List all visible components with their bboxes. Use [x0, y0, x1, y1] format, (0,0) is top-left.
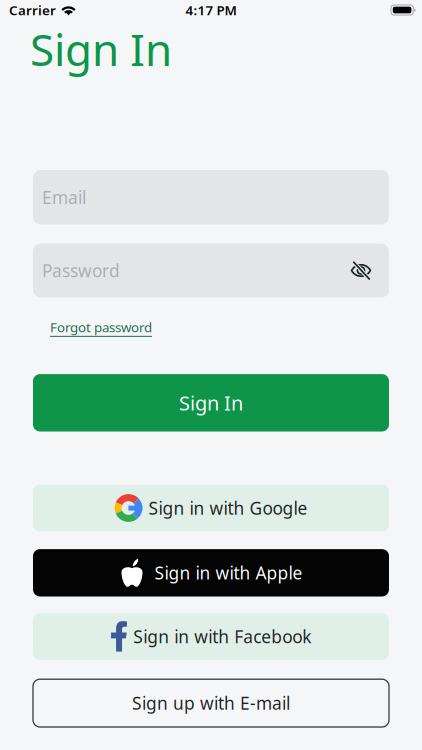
staticText: 4:17 PM [185, 1, 236, 19]
staticText: Carrier [9, 1, 56, 19]
staticText: Sign in with Apple [154, 561, 302, 584]
staticText: Sign in with Google [148, 496, 307, 519]
staticText: Sign up with E-mail [132, 692, 290, 715]
staticText: Sign In [179, 389, 243, 416]
staticText: Sign In [30, 20, 172, 78]
button[interactable]: Sign up with E-mail [33, 679, 389, 727]
staticText: Password [42, 259, 120, 282]
staticText: Forgot password [50, 318, 152, 336]
staticText: Email [42, 186, 86, 209]
button[interactable]: Sign in with Google [33, 484, 389, 531]
button[interactable]: Forgot password [50, 318, 152, 337]
button[interactable]: Sign in with Facebook [33, 613, 389, 660]
button[interactable]: Sign In [33, 374, 389, 431]
button[interactable]: Sign in with Apple [33, 549, 389, 596]
button[interactable]: Show password [342, 259, 372, 281]
staticText: Sign in with Facebook [133, 625, 311, 648]
